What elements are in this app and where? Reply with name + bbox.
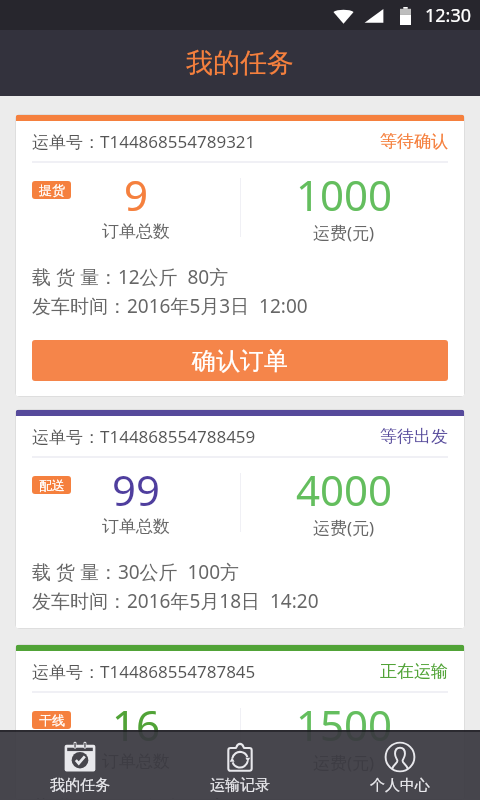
- staticText: 运费(元): [313, 221, 375, 242]
- staticText: 干线: [39, 712, 65, 728]
- button[interactable]: 确认订单: [32, 340, 448, 381]
- button[interactable]: Transport records: [160, 732, 320, 800]
- staticText: 发车时间：2016年5月18日 14:20: [32, 588, 319, 614]
- staticText: 4000: [296, 461, 393, 518]
- staticText: 个人中心: [370, 776, 430, 795]
- staticText: 1000: [296, 166, 393, 223]
- staticText: 等待出发: [380, 426, 448, 447]
- button[interactable]: My tasks: [0, 732, 160, 800]
- staticText: 载 货 量：12公斤 80方: [32, 264, 229, 290]
- staticText: 运单号：T144868554789321: [32, 130, 256, 153]
- staticText: 运费(元): [313, 516, 375, 537]
- staticText: 确认订单: [192, 346, 288, 376]
- button[interactable]: 运单号：T144868554789321: [16, 115, 464, 396]
- button[interactable]: 运单号：T144868554788459: [16, 410, 464, 628]
- staticText: 订单总数: [102, 516, 170, 537]
- staticText: 运费(元): [313, 751, 375, 772]
- staticText: 等待确认: [380, 131, 448, 152]
- staticText: 9: [124, 166, 149, 223]
- button[interactable]: 运单号：T144868554787845: [16, 645, 464, 799]
- staticText: 运单号：T144868554788459: [32, 425, 256, 448]
- staticText: 运输记录: [210, 776, 270, 795]
- staticText: 载 货 量：30公斤 100方: [32, 559, 240, 585]
- staticText: 正在运输: [380, 661, 448, 682]
- staticText: 提货: [39, 182, 65, 198]
- staticText: 我的任务: [186, 46, 294, 80]
- staticText: 我的任务: [50, 776, 110, 795]
- staticText: 1500: [296, 696, 393, 753]
- staticText: 16: [112, 696, 161, 753]
- staticText: 运单号：T144868554787845: [32, 660, 256, 683]
- staticText: 订单总数: [102, 751, 170, 772]
- staticText: 发车时间：2016年5月3日 12:00: [32, 293, 308, 319]
- staticText: 12:30: [425, 3, 472, 28]
- staticText: 订单总数: [102, 221, 170, 242]
- staticText: 99: [112, 461, 161, 518]
- staticText: 配送: [39, 477, 65, 493]
- button[interactable]: Profile: [320, 732, 480, 800]
